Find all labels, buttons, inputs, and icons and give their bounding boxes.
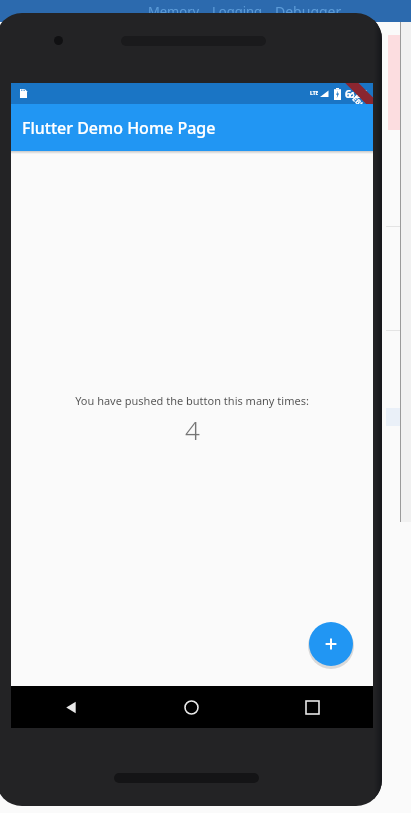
staticText: Debugger [275,2,342,21]
staticText: 6:26 [345,86,367,101]
button[interactable]: Increment [309,622,353,666]
button[interactable]: Recent apps [252,686,373,728]
staticText: Logging [212,2,263,20]
staticText: DEBUG [346,91,371,115]
staticText: Memory [148,2,200,20]
button[interactable]: Back [11,686,131,728]
button[interactable]: Home [131,686,252,728]
staticText: You have pushed the button this many tim… [75,393,309,408]
staticText: 4 [185,412,200,447]
staticText: Flutter Demo Home Page [22,117,216,139]
staticText: LTE [310,90,319,97]
